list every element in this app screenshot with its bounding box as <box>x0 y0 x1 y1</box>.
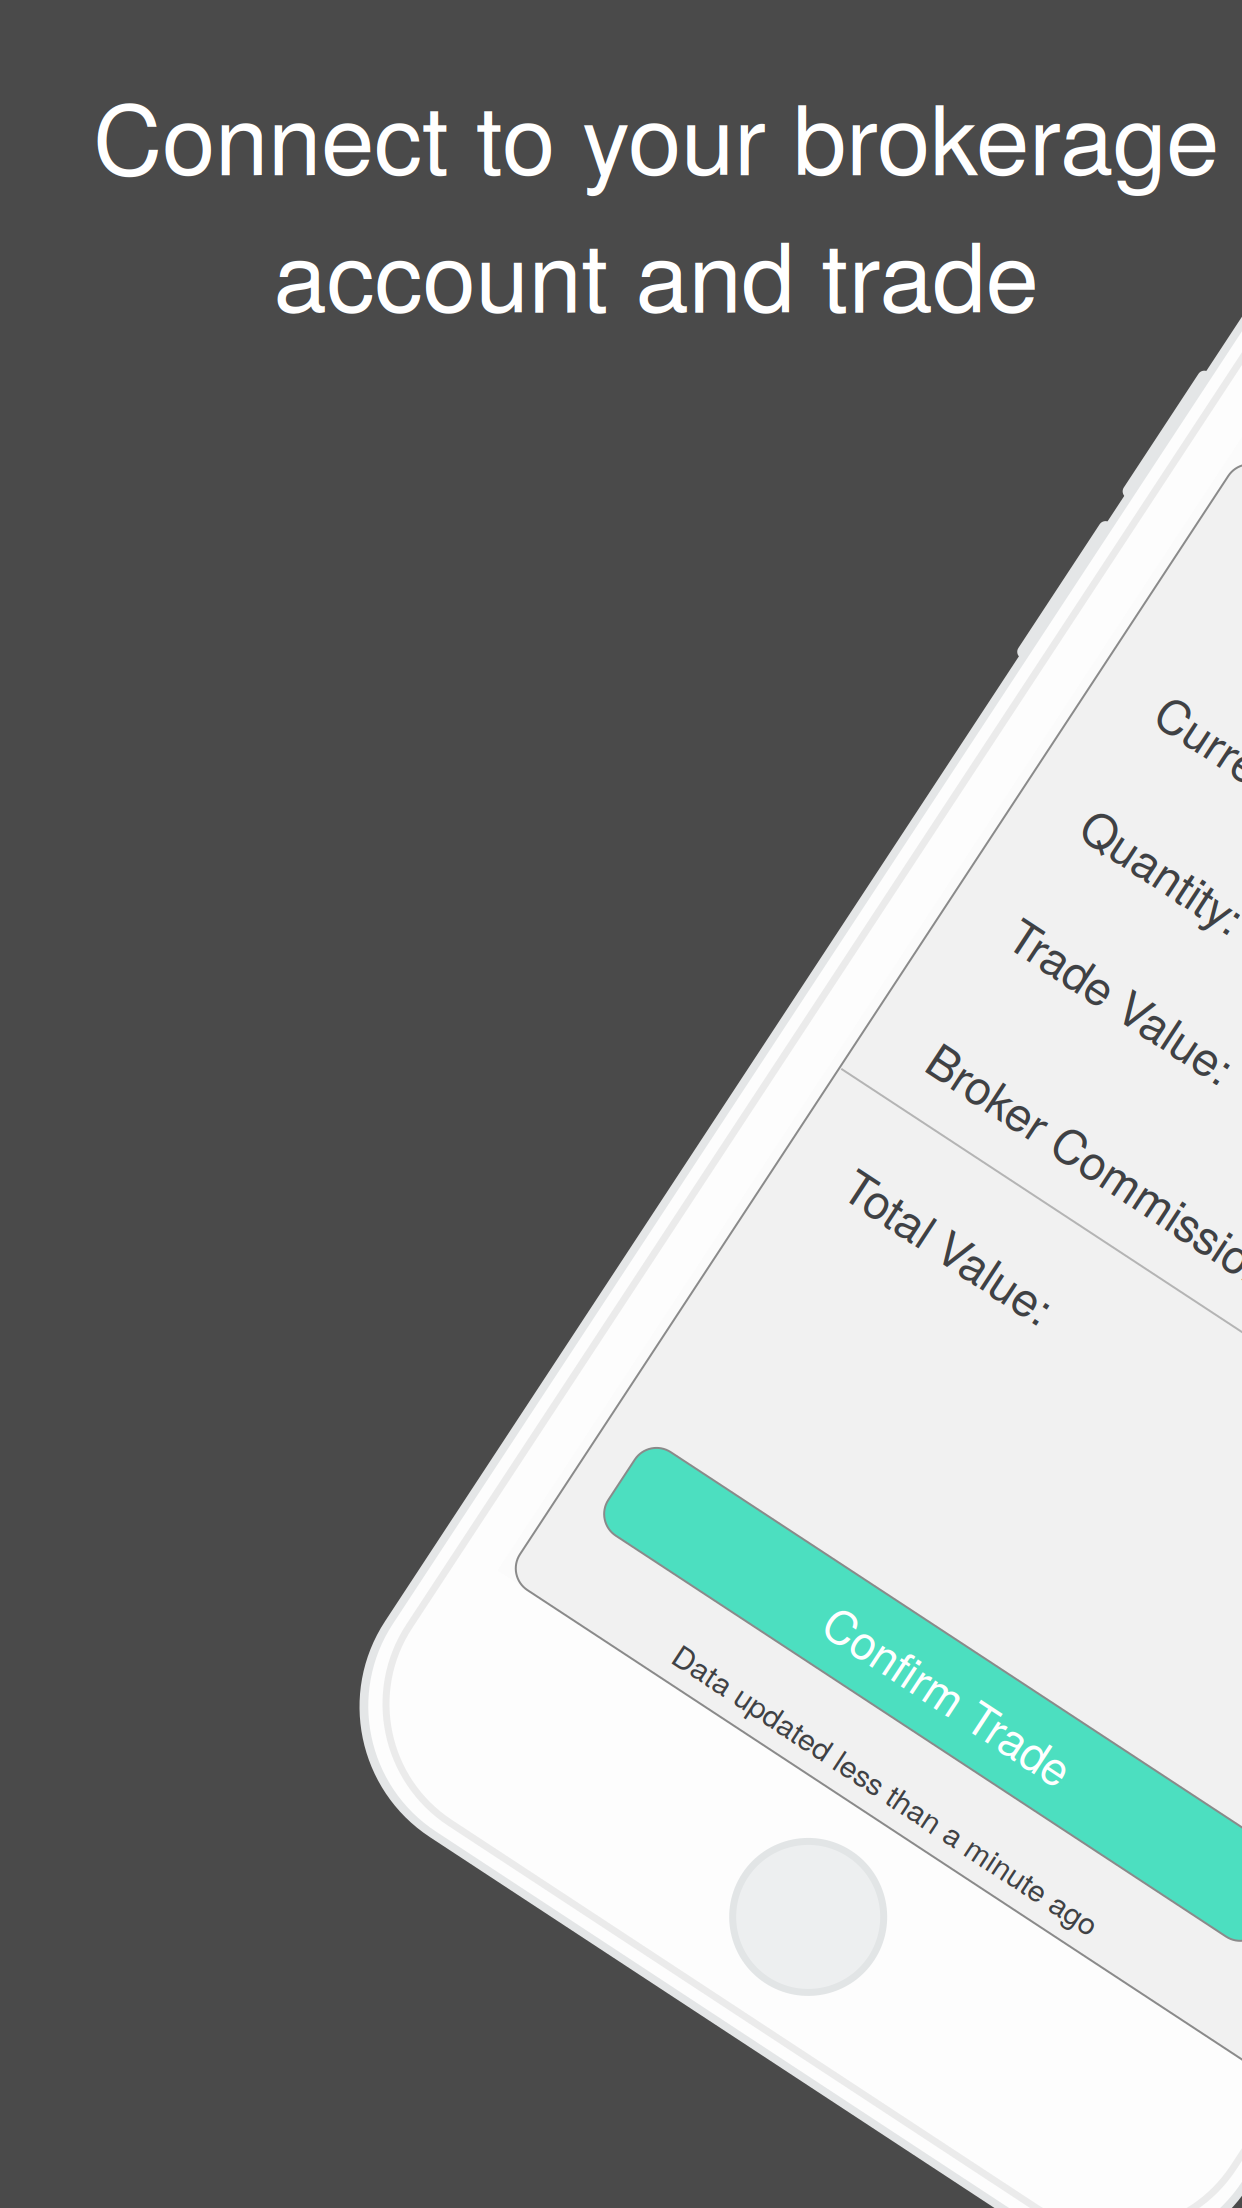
button[interactable]: Confirm Trade <box>914 1754 1242 1854</box>
staticText: Confirm Trade <box>1162 1771 1242 1836</box>
staticText: Data updated less than a minute ago <box>1054 1895 1242 1939</box>
staticText: Trade Value: <box>940 1094 1199 1161</box>
staticText: account and trade <box>273 202 1038 340</box>
staticText: Current Price: <box>940 827 1228 894</box>
staticText: Connect to your brokerage <box>93 65 1219 202</box>
staticText: Broker Commission: <box>940 1243 1242 1310</box>
staticText: Quantity: <box>940 963 1125 1030</box>
